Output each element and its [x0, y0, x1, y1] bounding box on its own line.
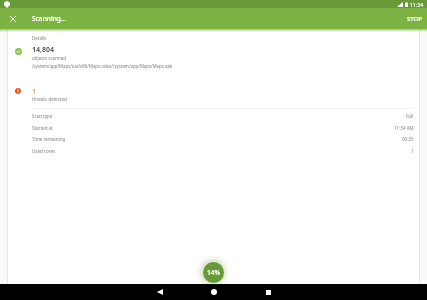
staticText: 1: [411, 148, 414, 154]
staticText: Scan type: [32, 113, 53, 119]
staticText: 1: [32, 87, 37, 97]
button[interactable]: Home: [204, 284, 224, 300]
staticText: Used cores: [32, 148, 56, 154]
staticText: Full: [406, 113, 414, 119]
staticText: 14%: [207, 268, 221, 277]
staticText: Details: [32, 35, 47, 41]
button[interactable]: Close: [3, 9, 23, 29]
staticText: 14,804: [32, 45, 55, 55]
staticText: Time remaining: [32, 136, 66, 142]
staticText: STOP: [407, 15, 422, 23]
button[interactable]: Back: [150, 284, 170, 300]
button[interactable]: Used cores: [7, 145, 420, 156]
staticText: threats detected: [32, 96, 67, 102]
staticText: 00:35: [402, 136, 414, 142]
staticText: 11:34: [410, 1, 424, 8]
button[interactable]: Scan type: [7, 110, 420, 121]
button[interactable]: Time remaining: [7, 133, 420, 144]
staticText: Started at: [32, 125, 53, 131]
button[interactable]: Recents: [258, 284, 278, 300]
staticText: Scanning…: [32, 14, 67, 23]
button[interactable]: 14%: [203, 262, 224, 283]
staticText: /system/app/Maps/oat/x86/Maps.odex//syst…: [32, 63, 173, 69]
button[interactable]: STOP: [400, 11, 427, 27]
staticText: 11:34 AM: [394, 125, 414, 131]
staticText: objects scanned: [32, 55, 67, 61]
button[interactable]: Started at: [7, 122, 420, 133]
